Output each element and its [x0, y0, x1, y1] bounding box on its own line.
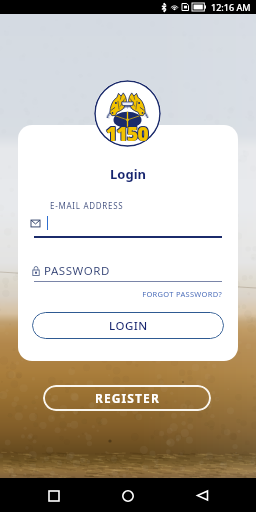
button[interactable]: Back — [182, 479, 222, 512]
staticText: FORGOT PASSWORD? — [142, 289, 222, 299]
staticText: 1150 — [107, 120, 150, 146]
staticText: LOGIN — [109, 318, 148, 334]
staticText: PASSWORD — [44, 263, 110, 279]
staticText: REGISTER — [95, 390, 160, 406]
staticText: E-MAIL ADDRESS — [50, 200, 124, 211]
staticText: Login — [18, 165, 238, 183]
staticText: 1150 — [106, 121, 149, 147]
button[interactable]: LOGIN — [32, 312, 224, 339]
button[interactable]: Home — [108, 479, 148, 512]
staticText: 1150 — [107, 121, 150, 147]
staticText: 12:16 AM — [211, 1, 251, 13]
button[interactable]: Password field — [30, 260, 224, 282]
button[interactable]: FORGOT PASSWORD? — [140, 287, 222, 300]
staticText: 1150 — [105, 121, 148, 147]
button[interactable]: REGISTER — [43, 385, 211, 411]
staticText: 1150 — [105, 120, 148, 146]
button[interactable]: E-mail address field — [30, 213, 224, 238]
button[interactable]: Recent apps — [34, 479, 74, 512]
